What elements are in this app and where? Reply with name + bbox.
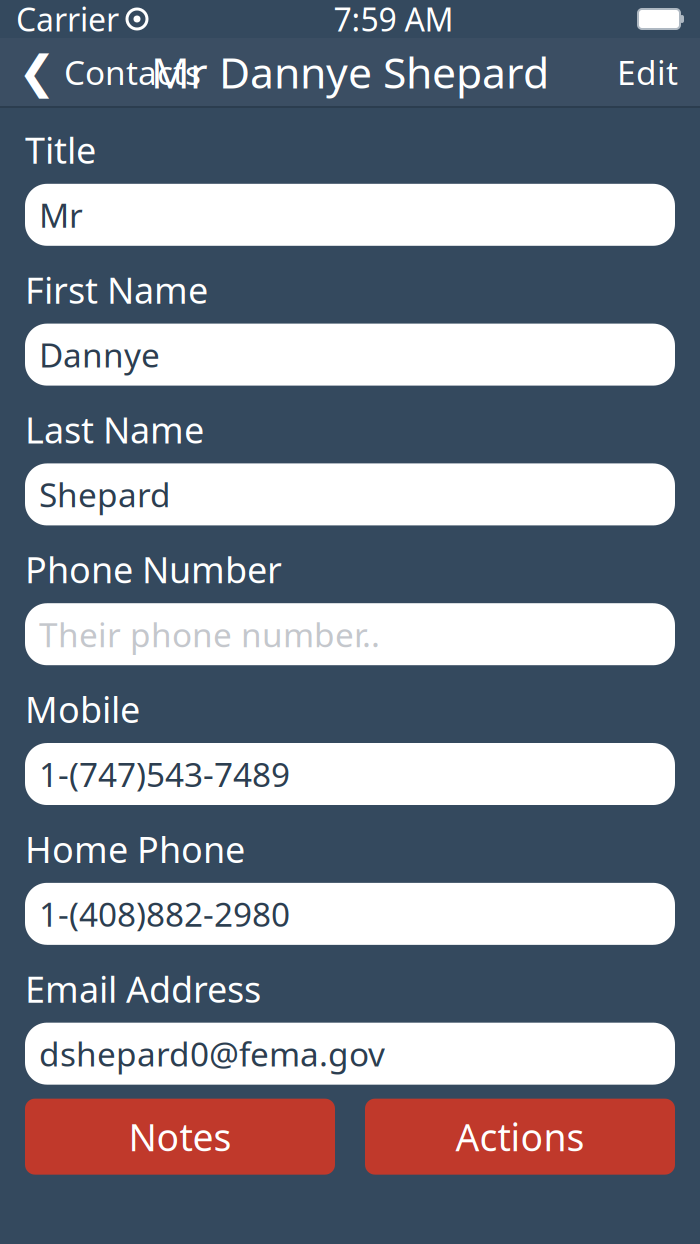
staticText: Home Phone bbox=[25, 825, 245, 873]
button[interactable]: Notes bbox=[25, 1099, 335, 1175]
staticText: Notes bbox=[128, 1112, 231, 1161]
staticText: First Name bbox=[25, 266, 208, 314]
staticText: Actions bbox=[455, 1112, 584, 1161]
staticText: Edit bbox=[617, 50, 678, 94]
staticText: Last Name bbox=[25, 406, 204, 453]
staticText: dshepard0@fema.gov bbox=[39, 1031, 385, 1076]
staticText: Email Address bbox=[25, 965, 261, 1013]
button[interactable]: Actions bbox=[365, 1099, 675, 1175]
staticText: 1-(747)543-7489 bbox=[39, 752, 290, 796]
staticText: Title bbox=[25, 126, 96, 174]
staticText: Dannye bbox=[39, 332, 160, 377]
staticText: ❮ bbox=[18, 46, 56, 98]
button[interactable]: Edit bbox=[595, 38, 700, 106]
staticText: Mobile bbox=[25, 685, 140, 733]
staticText: Their phone number.. bbox=[39, 612, 380, 656]
staticText: Mr Dannye Shepard bbox=[151, 44, 549, 100]
staticText: Phone Number bbox=[25, 545, 282, 593]
staticText: Shepard bbox=[39, 472, 171, 517]
staticText: Carrier bbox=[16, 0, 119, 40]
staticText: 7:59 AM bbox=[333, 0, 453, 40]
staticText: Contacts bbox=[64, 50, 201, 94]
staticText: 1-(408)882-2980 bbox=[39, 892, 290, 936]
button[interactable]: ❮ bbox=[0, 38, 219, 106]
staticText: Mr bbox=[39, 193, 83, 237]
